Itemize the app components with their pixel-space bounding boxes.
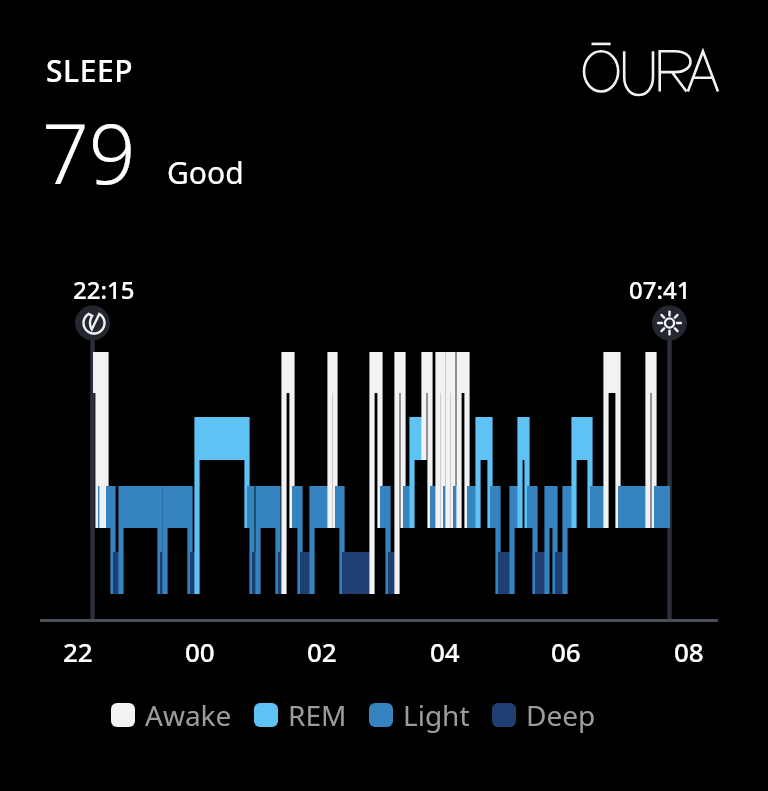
- staticText: REM: [288, 696, 347, 734]
- staticText: 06: [551, 634, 581, 668]
- staticText: 08: [674, 634, 704, 668]
- button[interactable]: Oura: [584, 40, 718, 96]
- staticText: 04: [430, 634, 460, 668]
- staticText: 02: [307, 634, 337, 668]
- button[interactable]: Awake: [111, 696, 232, 734]
- button[interactable]: Light: [369, 696, 470, 734]
- staticText: Light: [403, 696, 470, 734]
- staticText: 07:41: [629, 273, 691, 306]
- staticText: SLEEP: [46, 50, 134, 91]
- staticText: Awake: [145, 696, 232, 734]
- staticText: Deep: [526, 696, 596, 734]
- staticText: 22:15: [73, 273, 135, 306]
- staticText: 00: [185, 634, 215, 668]
- button[interactable]: REM: [254, 696, 347, 734]
- button[interactable]: Deep: [492, 696, 596, 734]
- staticText: 79: [42, 96, 136, 208]
- staticText: Good: [167, 152, 244, 193]
- staticText: 22: [63, 634, 93, 668]
